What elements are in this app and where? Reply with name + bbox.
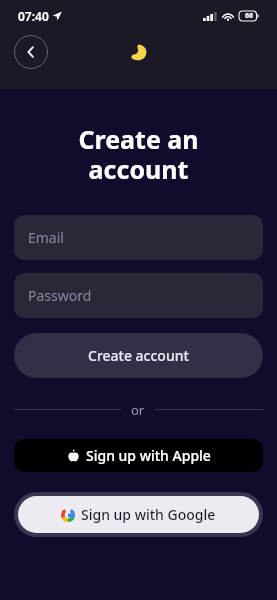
staticText: Password [28, 286, 92, 305]
staticText: Create an account [14, 122, 263, 187]
staticText: Sign up with Apple [86, 446, 211, 465]
staticText: 66 [245, 11, 254, 21]
staticText: 07:40 [18, 8, 49, 24]
button[interactable]: Sign up with Apple [14, 439, 263, 472]
button[interactable]: Create account [14, 333, 263, 378]
staticText: or [131, 401, 145, 417]
button[interactable]: Back [14, 35, 48, 69]
staticText: Email [28, 228, 64, 247]
button[interactable]: Sign up with Google [14, 492, 263, 537]
button[interactable]: Email [14, 215, 263, 260]
button[interactable]: Password [14, 273, 263, 318]
staticText: Create account [88, 346, 189, 365]
staticText: Sign up with Google [81, 505, 216, 524]
